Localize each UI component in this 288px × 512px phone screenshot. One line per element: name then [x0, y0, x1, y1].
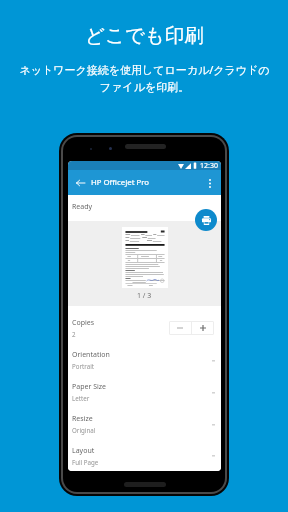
staticText: Ready: [72, 202, 93, 212]
staticText: Full Page: [72, 458, 99, 466]
staticText: ネットワーク接続を使用してローカル/クラウドの ファイルを印刷。: [19, 62, 270, 95]
button[interactable]: Paper Size: [68, 376, 221, 408]
staticText: Copies: [72, 318, 95, 328]
staticText: Orientation: [72, 350, 110, 360]
staticText: Resize: [72, 414, 93, 424]
staticText: Portrait: [72, 362, 95, 370]
button[interactable]: Back: [73, 176, 87, 190]
staticText: HP OfficeJet Pro: [91, 177, 149, 188]
staticText: Layout: [72, 446, 95, 456]
staticText: 1 / 3: [137, 291, 152, 301]
staticText: 12:30: [200, 161, 218, 170]
button[interactable]: Copies: [68, 312, 221, 344]
staticText: Original: [72, 426, 96, 434]
button[interactable]: Orientation: [68, 344, 221, 376]
staticText: どこでも印刷: [85, 23, 204, 48]
button[interactable]: Increase copies: [192, 321, 214, 335]
staticText: 2: [72, 330, 76, 338]
button[interactable]: More options: [203, 176, 217, 190]
button[interactable]: Resize: [68, 408, 221, 440]
button[interactable]: Decrease copies: [169, 321, 191, 335]
button[interactable]: Print: [195, 209, 217, 231]
staticText: Letter: [72, 394, 90, 402]
staticText: Paper Size: [72, 382, 107, 392]
button[interactable]: Layout: [68, 440, 221, 471]
